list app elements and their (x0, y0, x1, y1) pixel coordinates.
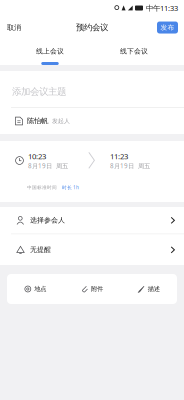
staticText: 8月19日 周五 (110, 161, 150, 170)
staticText: 线下会议 (120, 47, 148, 56)
staticText: 添加会议主题 (12, 85, 66, 97)
staticText: 选择参会人 (30, 216, 65, 225)
staticText: 中午11:33 (146, 3, 178, 13)
staticText: 11:23 (110, 151, 128, 161)
staticText: 发起人 (52, 117, 70, 125)
staticText: 时长 1h (62, 184, 79, 191)
button[interactable]: 描述 (120, 274, 177, 304)
button[interactable]: 发布 (157, 21, 178, 33)
staticText: 取消 (7, 23, 21, 32)
button[interactable]: 线上会议 (8, 39, 92, 65)
button[interactable]: 附件 (64, 274, 120, 304)
button[interactable]: 地点 (7, 274, 64, 304)
button[interactable]: 取消 (1, 17, 27, 38)
staticText: 附件 (91, 285, 103, 293)
staticText: 线上会议 (36, 47, 64, 56)
staticText: 地点 (34, 285, 46, 293)
staticText: 陈怡帆 (27, 116, 48, 126)
staticText: 预约会议 (76, 22, 108, 33)
staticText: 描述 (148, 285, 160, 293)
button[interactable]: 线下会议 (92, 39, 176, 65)
staticText: 无提醒 (30, 245, 51, 254)
staticText: 发布 (160, 23, 174, 32)
button[interactable]: 选择参会人 (0, 207, 184, 233)
staticText: 10:23 (28, 151, 46, 161)
staticText: 8月19日 周五 (28, 161, 68, 170)
button[interactable]: 无提醒 (0, 234, 184, 265)
staticText: 中国标准时间 (27, 184, 57, 190)
